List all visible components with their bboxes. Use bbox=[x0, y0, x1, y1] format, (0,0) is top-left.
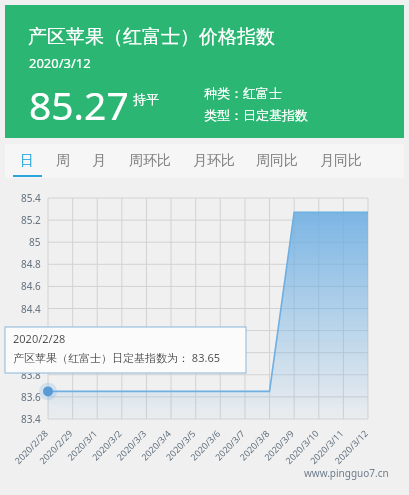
staticText: 月环比 bbox=[193, 152, 235, 170]
button[interactable]: 周环比 bbox=[123, 144, 177, 177]
button[interactable]: 日 bbox=[14, 144, 40, 177]
staticText: 持平 bbox=[133, 91, 159, 107]
button[interactable]: 周 bbox=[50, 144, 76, 177]
staticText: 月 bbox=[92, 152, 106, 170]
button[interactable]: 月 bbox=[86, 144, 112, 177]
button[interactable]: 月环比 bbox=[187, 144, 241, 177]
staticText: www.pingguo7.cn bbox=[304, 466, 389, 480]
staticText: 周 bbox=[56, 152, 70, 170]
staticText: 产区苹果（红富士）价格指数 bbox=[28, 25, 275, 49]
staticText: 85.27 bbox=[29, 78, 129, 131]
staticText: 产区苹果（红富士）日定基指数为： 83.65 bbox=[13, 350, 220, 365]
staticText: 日 bbox=[20, 152, 34, 170]
staticText: 周环比 bbox=[129, 152, 171, 170]
button[interactable]: 周同比 bbox=[250, 144, 304, 177]
staticText: 2020/2/28 bbox=[13, 331, 66, 346]
staticText: 类型：日定基指数 bbox=[204, 107, 308, 123]
button[interactable]: 产区苹果（红富士）价格指数 bbox=[5, 5, 404, 138]
staticText: 月同比 bbox=[320, 152, 362, 170]
staticText: 2020/3/12 bbox=[29, 54, 91, 72]
staticText: 周同比 bbox=[256, 152, 298, 170]
staticText: 种类：红富士 bbox=[204, 85, 282, 101]
button[interactable]: 月同比 bbox=[314, 144, 368, 177]
